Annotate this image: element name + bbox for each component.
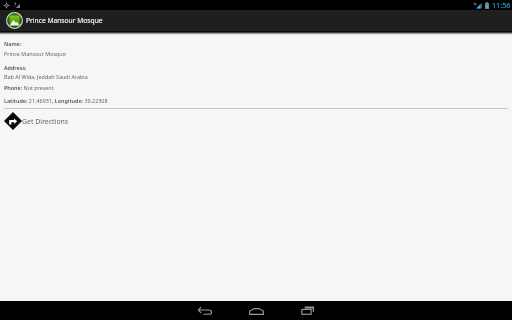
button[interactable]: Get Directions <box>0 111 512 131</box>
staticText: Prince Mansour Mosque <box>4 50 66 57</box>
staticText: 11:56 <box>492 0 511 10</box>
button[interactable]: Back <box>180 301 231 320</box>
button[interactable]: Prince Mansour Mosque <box>0 10 103 31</box>
staticText: Address: <box>4 64 27 71</box>
staticText: Bab Al Wida, Jeddah Saudi Arabia <box>4 73 88 80</box>
button[interactable]: Home <box>231 301 282 320</box>
staticText: Get Directions <box>22 117 69 126</box>
staticText: Latitude: 21.46931, Longitude: 39.22308 <box>4 97 108 104</box>
staticText: Phone: Not present <box>4 84 54 91</box>
staticText: Prince Mansour Mosque <box>26 16 103 25</box>
staticText: Name: <box>4 40 22 47</box>
button[interactable]: Recent apps <box>282 301 333 320</box>
